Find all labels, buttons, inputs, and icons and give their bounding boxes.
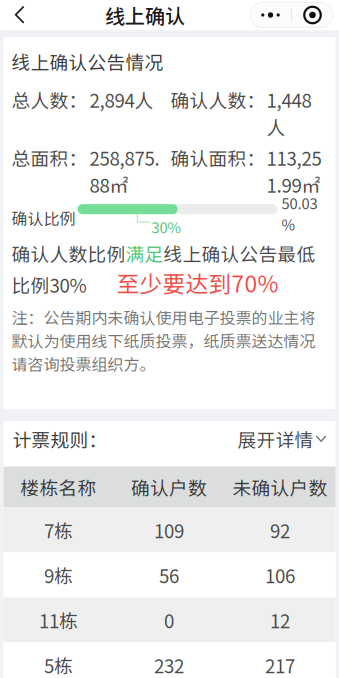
button[interactable]: 展开详情 xyxy=(237,425,326,452)
staticText: 线上确认公告情况 xyxy=(11,48,163,75)
staticText: 11栋 xyxy=(39,606,78,633)
staticText: 确认户数 xyxy=(131,473,207,500)
staticText: 展开详情 xyxy=(237,425,313,452)
staticText: 注：公告期内未确认使用电子投票的业主将默认为使用线下纸质投票，纸质票送达情况请咨… xyxy=(11,305,315,375)
staticText: 未确认户数 xyxy=(232,473,327,500)
staticText: 5栋 xyxy=(44,651,73,678)
staticText: 12 xyxy=(270,606,290,633)
staticText: 确认面积： xyxy=(170,144,265,171)
staticText: 232 xyxy=(154,651,184,678)
staticText: 1,448人 xyxy=(266,86,311,140)
staticText: 计票规则： xyxy=(12,425,107,452)
staticText: 106 xyxy=(265,561,295,588)
staticText: 50.03% xyxy=(281,192,317,235)
staticText: 258,875.88㎡ xyxy=(89,144,159,198)
staticText: 确认人数比例满足线上确认公告最低比例30% 至少要达到70% xyxy=(11,240,315,298)
staticText: 92 xyxy=(270,516,290,543)
staticText: 217 xyxy=(265,651,295,678)
staticText: 总人数： xyxy=(11,86,87,113)
staticText: 线上确认 xyxy=(105,0,185,29)
staticText: 2,894人 xyxy=(89,86,153,113)
button[interactable]: 返回 xyxy=(0,0,40,30)
button[interactable]: 更多 xyxy=(250,2,291,27)
staticText: 56 xyxy=(159,561,179,588)
staticText: 7栋 xyxy=(44,516,73,543)
staticText: 确认比例 xyxy=(11,206,75,229)
staticText: 总面积： xyxy=(11,144,87,171)
staticText: 109 xyxy=(154,516,184,543)
staticText: 9栋 xyxy=(44,561,73,588)
staticText: 113,251.99㎡ xyxy=(266,144,321,198)
button[interactable]: 关闭 xyxy=(292,2,333,27)
staticText: 楼栋名称 xyxy=(20,473,96,500)
staticText: 30% xyxy=(151,216,181,237)
staticText: 确认人数： xyxy=(170,86,265,113)
staticText: 0 xyxy=(164,606,174,633)
